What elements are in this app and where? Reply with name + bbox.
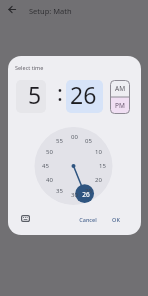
staticText: 30	[71, 191, 78, 199]
button[interactable]: OK	[108, 213, 124, 225]
staticText: Cancel	[79, 216, 97, 223]
staticText: 20	[95, 176, 102, 184]
button[interactable]: 5	[16, 80, 46, 113]
button[interactable]	[21, 215, 30, 222]
staticText: 5	[28, 80, 42, 110]
button[interactable]: AM	[110, 80, 130, 97]
staticText: 05	[85, 137, 92, 145]
staticText: 00	[71, 133, 78, 141]
staticText: :	[57, 77, 63, 107]
staticText: AM	[115, 84, 126, 93]
staticText: Select time	[15, 64, 44, 71]
staticText: 55	[56, 137, 63, 145]
button[interactable]: Cancel	[75, 213, 101, 225]
staticText: 26	[82, 190, 90, 199]
staticText: 25	[85, 187, 92, 195]
staticText: 26	[70, 80, 97, 110]
button[interactable]: 26	[66, 80, 103, 113]
staticText: OK	[112, 216, 120, 223]
button[interactable]: PM	[110, 97, 130, 114]
staticText: Setup: Math	[29, 6, 72, 16]
staticText: 50	[46, 148, 53, 156]
staticText: 40	[46, 176, 53, 184]
staticText: PM	[115, 101, 125, 110]
staticText: 45	[42, 162, 49, 170]
staticText: 35	[56, 187, 63, 195]
button[interactable]	[7, 5, 17, 15]
staticText: 15	[99, 162, 106, 170]
staticText: 10	[95, 148, 102, 156]
